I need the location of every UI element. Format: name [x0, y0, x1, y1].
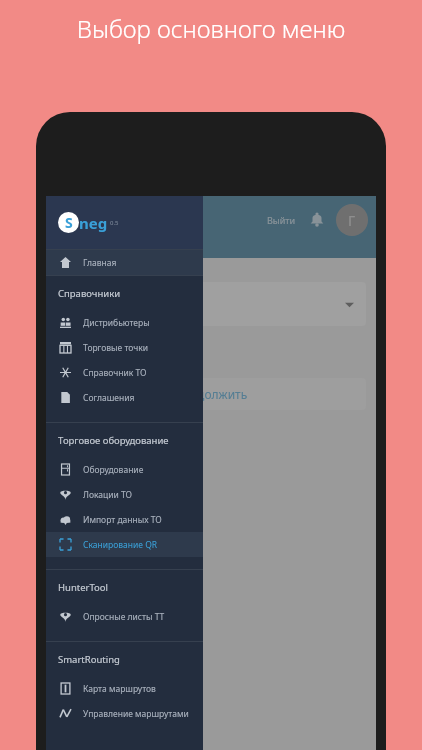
- staticText: Справочники: [58, 287, 121, 300]
- staticText: Торговое оборудование: [58, 434, 169, 447]
- button[interactable]: Локации ТО: [46, 482, 203, 507]
- button[interactable]: Сканирование QR: [46, 532, 203, 557]
- staticText: Сканирование ТО: [60, 348, 164, 364]
- staticText: Г: [348, 211, 356, 230]
- button[interactable]: Выйти: [267, 214, 296, 226]
- staticText: Карта маршрутов: [83, 683, 156, 695]
- staticText: Выбор основного меню: [0, 12, 422, 45]
- button[interactable]: Profile: [336, 204, 368, 236]
- button[interactable]: Дистрибьютеры: [46, 310, 203, 335]
- button[interactable]: Notifications: [308, 211, 326, 229]
- button[interactable]: [56, 282, 366, 326]
- staticText: Главная: [83, 257, 117, 269]
- staticText: Оборудование: [83, 464, 144, 476]
- button[interactable]: Оборудование: [46, 457, 203, 482]
- staticText: Сканирование QR: [83, 539, 158, 551]
- staticText: Опросные листы ТТ: [83, 611, 165, 623]
- staticText: SmartRouting: [58, 653, 120, 666]
- staticText: Импорт данных ТО: [83, 514, 162, 526]
- staticText: Дистрибьютеры: [83, 317, 150, 329]
- staticText: S: [65, 213, 73, 232]
- button[interactable]: Справочник ТО: [46, 360, 203, 385]
- staticText: neg: [79, 213, 108, 233]
- staticText: Соглашения: [83, 392, 135, 404]
- button[interactable]: Соглашения: [46, 385, 203, 410]
- staticText: Справочник ТО: [83, 367, 147, 379]
- staticText: Управление маршрутами: [83, 708, 189, 720]
- button[interactable]: Торговые точки: [46, 335, 203, 360]
- staticText: Продолжить: [174, 386, 248, 402]
- staticText: HunterTool: [58, 581, 109, 594]
- button[interactable]: Карта маршрутов: [46, 676, 203, 701]
- staticText: Локации ТО: [83, 489, 133, 501]
- button[interactable]: Продолжить: [56, 378, 366, 410]
- button[interactable]: Опросные листы ТТ: [46, 604, 203, 629]
- button[interactable]: Управление маршрутами: [46, 701, 203, 726]
- staticText: 0.5: [110, 219, 119, 227]
- button[interactable]: Главная: [46, 250, 203, 275]
- staticText: Торговые точки: [83, 342, 149, 354]
- staticText: Сканирование ТО: [60, 228, 202, 251]
- button[interactable]: Импорт данных ТО: [46, 507, 203, 532]
